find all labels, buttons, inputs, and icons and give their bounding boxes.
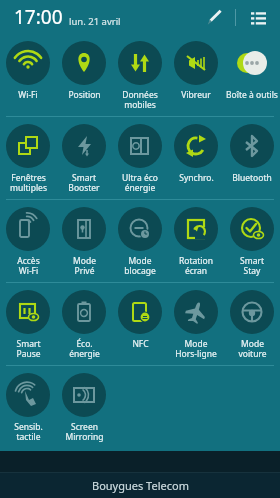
staticText: Screen Mirroring: [65, 421, 104, 442]
staticText: Rotation écran: [179, 255, 213, 276]
button[interactable]: Boîte à outils: [224, 34, 280, 116]
staticText: Sensib. tactile: [14, 421, 43, 442]
button[interactable]: Mode Hors-ligne: [168, 283, 224, 365]
staticText: Wi-Fi: [18, 89, 38, 101]
staticText: Position: [68, 89, 101, 101]
button[interactable]: Vibreur: [168, 34, 224, 116]
staticText: Mode voiture: [238, 338, 267, 359]
staticText: NFC: [132, 338, 149, 350]
staticText: Mode Privé: [73, 255, 96, 276]
button[interactable]: Sensib. tactile: [0, 366, 56, 448]
button[interactable]: Bluetooth: [224, 117, 280, 199]
staticText: Éco. énergie: [69, 338, 100, 359]
button[interactable]: Screen Mirroring: [56, 366, 112, 448]
button[interactable]: Edit: [200, 3, 228, 31]
staticText: Smart Stay: [240, 255, 264, 276]
staticText: Mode blocage: [124, 255, 156, 276]
staticText: Bluetooth: [232, 172, 272, 184]
button[interactable]: Éco. énergie: [56, 283, 112, 365]
staticText: Bouygues Telecom: [92, 478, 189, 493]
button[interactable]: Données mobiles: [112, 34, 168, 116]
staticText: Smart Booster: [68, 172, 100, 193]
button[interactable]: NFC: [112, 283, 168, 365]
button[interactable]: Position: [56, 34, 112, 116]
button[interactable]: Accès Wi-Fi: [0, 200, 56, 282]
staticText: Vibreur: [181, 89, 211, 101]
button[interactable]: Wi-Fi: [0, 34, 56, 116]
button[interactable]: Mode blocage: [112, 200, 168, 282]
staticText: lun. 21 avril: [69, 15, 121, 28]
button[interactable]: Smart Booster: [56, 117, 112, 199]
staticText: Ultra éco énergie: [122, 172, 158, 193]
button[interactable]: Smart Stay: [224, 200, 280, 282]
staticText: Smart Pause: [16, 338, 41, 359]
staticText: Données mobiles: [122, 89, 158, 110]
button[interactable]: Mode Privé: [56, 200, 112, 282]
button[interactable]: Smart Pause: [0, 283, 56, 365]
staticText: Synchro.: [179, 172, 214, 184]
staticText: 17:00: [14, 4, 63, 30]
staticText: Fenêtres multiples: [10, 172, 47, 193]
staticText: Mode Hors-ligne: [175, 338, 217, 359]
staticText: Accès Wi-Fi: [17, 255, 40, 276]
button[interactable]: Mode voiture: [224, 283, 280, 365]
button[interactable]: Rotation écran: [168, 200, 224, 282]
staticText: Boîte à outils: [226, 89, 278, 101]
button[interactable]: Settings list: [244, 3, 272, 31]
button[interactable]: Ultra éco énergie: [112, 117, 168, 199]
button[interactable]: Synchro.: [168, 117, 224, 199]
button[interactable]: Fenêtres multiples: [0, 117, 56, 199]
